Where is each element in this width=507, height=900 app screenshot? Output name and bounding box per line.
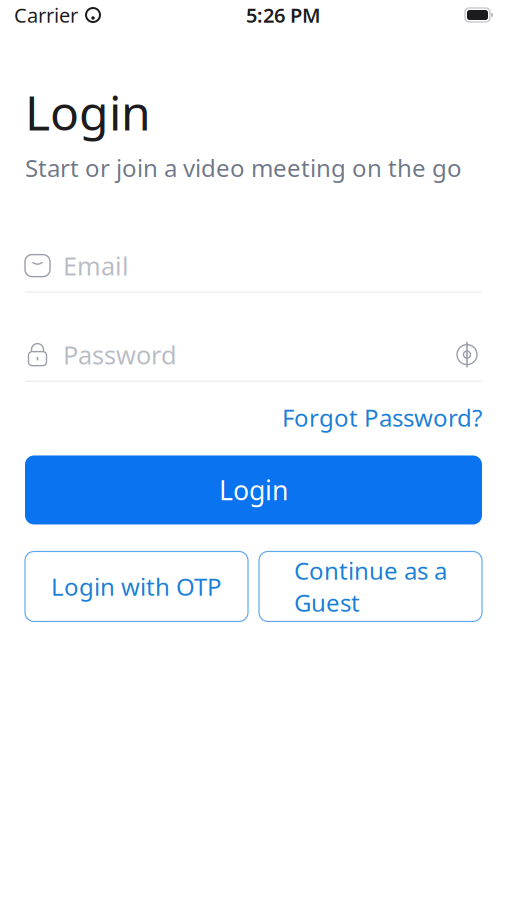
button[interactable]: Login (25, 455, 482, 524)
staticText: Password (63, 338, 177, 371)
staticText: Login with OTP (51, 571, 222, 602)
staticText: Carrier (14, 2, 78, 28)
button[interactable]: Continue as a Guest (259, 551, 482, 621)
staticText: Start or join a video meeting on the go (25, 152, 462, 184)
staticText: Login (25, 80, 151, 144)
staticText: Continue as a Guest (294, 555, 447, 618)
button[interactable]: Forgot Password? (282, 396, 482, 439)
staticText: Email (63, 249, 129, 282)
button[interactable]: Show password (452, 340, 482, 370)
staticText: Login (219, 472, 288, 508)
button[interactable]: Login with OTP (25, 551, 248, 621)
staticText: 5:26 PM (246, 2, 321, 28)
staticText: Forgot Password? (282, 402, 482, 433)
